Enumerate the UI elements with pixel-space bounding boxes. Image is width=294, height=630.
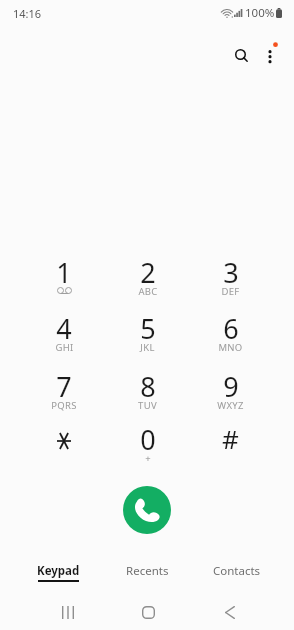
staticText: 1 xyxy=(56,254,72,291)
button[interactable]: Recents xyxy=(103,563,192,589)
button[interactable]: 9 xyxy=(189,364,272,417)
button[interactable]: More options xyxy=(257,40,283,68)
button[interactable]: 5 xyxy=(106,306,189,364)
staticText: # xyxy=(222,421,239,456)
staticText: 0 xyxy=(140,421,156,458)
staticText: 9 xyxy=(223,368,239,405)
button[interactable]: 6 xyxy=(189,306,272,364)
button[interactable] xyxy=(22,417,106,475)
staticText: 7 xyxy=(56,368,72,405)
staticText: ABC xyxy=(138,285,158,298)
staticText: MNO xyxy=(218,341,243,354)
button[interactable]: # xyxy=(189,417,272,475)
button[interactable]: 0 xyxy=(106,417,189,475)
button[interactable]: Recent apps xyxy=(28,600,108,625)
staticText: PQRS xyxy=(51,399,77,412)
staticText: TUV xyxy=(138,399,157,412)
staticText: JKL xyxy=(140,341,155,354)
button[interactable]: 3 xyxy=(189,250,272,306)
staticText: GHI xyxy=(55,341,74,354)
button[interactable]: 7 xyxy=(22,364,106,417)
staticText: 6 xyxy=(223,310,239,347)
button[interactable]: Keypad xyxy=(13,563,103,589)
staticText: 5 xyxy=(140,310,156,347)
staticText: + xyxy=(145,452,151,465)
button[interactable]: 1 xyxy=(22,250,106,306)
staticText: 2 xyxy=(140,254,156,291)
button[interactable]: Back xyxy=(189,600,270,625)
staticText: 14:16 xyxy=(13,6,42,21)
staticText: DEF xyxy=(221,285,240,298)
button[interactable]: 8 xyxy=(106,364,189,417)
staticText: WXYZ xyxy=(217,399,244,412)
staticText: Keypad xyxy=(37,563,80,579)
staticText: 100% xyxy=(245,5,275,21)
button[interactable]: Home xyxy=(108,600,189,625)
staticText: 8 xyxy=(140,368,156,405)
button[interactable]: Call xyxy=(123,486,171,534)
button[interactable]: Contacts xyxy=(192,563,281,589)
staticText: Contacts xyxy=(213,563,261,579)
button[interactable]: Search xyxy=(227,40,257,72)
staticText: 4 xyxy=(56,310,72,347)
staticText: Recents xyxy=(126,563,169,579)
button[interactable]: 2 xyxy=(106,250,189,306)
staticText: 3 xyxy=(223,254,239,291)
button[interactable]: 4 xyxy=(22,306,106,364)
